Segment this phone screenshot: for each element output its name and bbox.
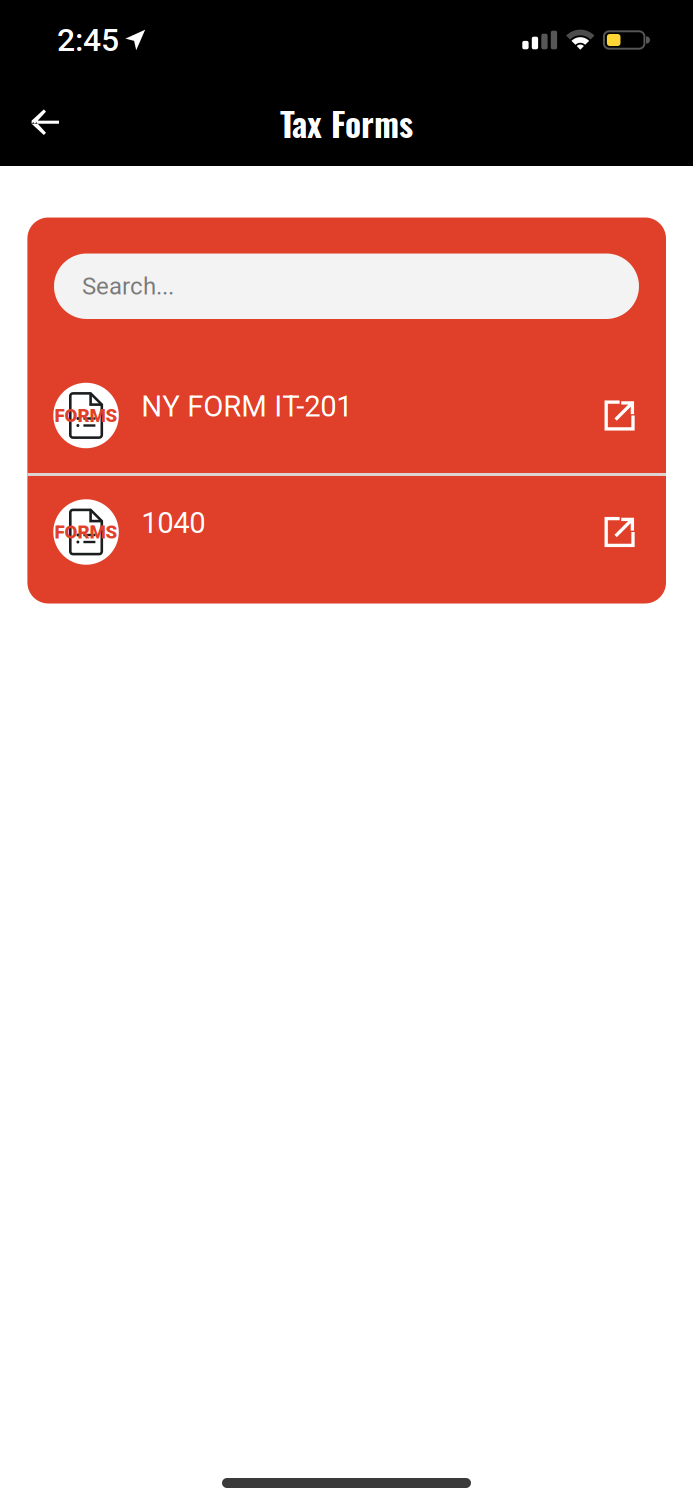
staticText: FORMS (54, 521, 117, 543)
staticText: Search... (82, 272, 174, 300)
staticText: Tax Forms (280, 98, 413, 148)
staticText: 2:45 (57, 21, 119, 59)
button[interactable]: Back (14, 92, 76, 154)
staticText: FORMS (54, 405, 117, 426)
button[interactable]: FORMS (27, 476, 666, 592)
staticText: 1040 (141, 506, 205, 540)
staticText: NY FORM IT-201 (141, 389, 352, 424)
button[interactable]: FORMS (27, 362, 666, 473)
